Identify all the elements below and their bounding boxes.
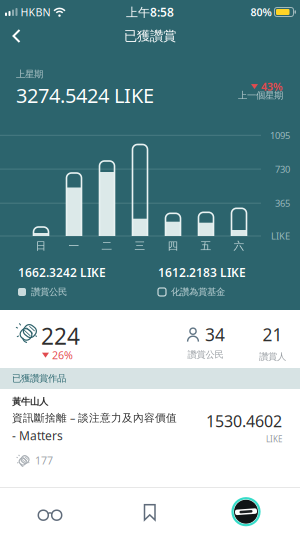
staticText: 已獲讚賞作品 [12,373,66,384]
staticText: 43% [261,79,283,94]
button[interactable]: Bookmarks [100,492,200,522]
staticText: 三 [134,239,145,252]
staticText: HKBN [20,5,50,19]
staticText: LIKE [266,434,282,444]
staticText: 四 [167,239,178,252]
staticText: 已獲讚賞 [124,28,176,44]
staticText: 177 [35,453,53,467]
staticText: 26% [52,348,73,362]
button[interactable]: Profile [200,488,300,526]
staticText: 730 [275,163,290,175]
staticText: - Matters [12,428,63,443]
staticText: 上星期 [16,68,43,80]
staticText: 1662.3242 LIKE [18,264,106,280]
staticText: 一 [68,239,79,252]
staticText: 80% [250,5,271,19]
staticText: 1612.2183 LIKE [158,264,246,280]
staticText: 365 [275,197,290,209]
staticText: 上午8:58 [126,4,174,20]
staticText: 六 [233,239,244,252]
staticText: 224 [41,321,80,351]
button[interactable]: Works [0,491,100,522]
staticText: 讚賞人 [259,351,286,362]
staticText: LIKE [271,230,290,242]
button[interactable]: 黃牛山人 [0,389,300,466]
staticText: 五 [200,239,211,252]
staticText: 日 [35,239,46,252]
button[interactable]: Back [0,25,21,47]
staticText: 上一個星期 [238,90,283,101]
staticText: 二 [101,239,112,252]
staticText: 黃牛山人 [12,396,48,407]
staticText: 21 [262,323,282,346]
staticText: 1095 [270,129,290,141]
staticText: 資訊斷捨離 – 談注意力及內容價值 [12,410,177,425]
staticText: 化讚為賞基金 [171,286,225,298]
staticText: 1530.4602 [206,410,282,432]
staticText: 讚賞公民 [31,286,67,298]
staticText: 讚賞公民 [187,349,223,360]
staticText: 34 [205,323,225,346]
staticText: 3274.5424 LIKE [16,82,154,109]
